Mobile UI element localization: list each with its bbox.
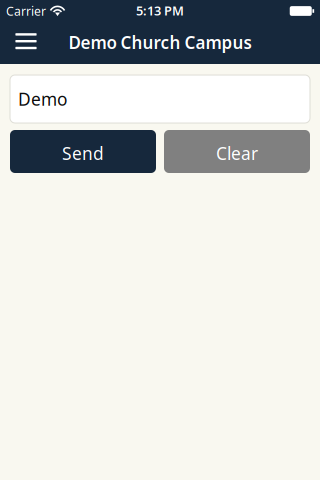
button[interactable]: Send xyxy=(10,130,156,173)
button[interactable]: Menu xyxy=(4,20,48,62)
staticText: Clear xyxy=(216,141,258,165)
staticText: Send xyxy=(62,141,104,165)
button[interactable]: Clear xyxy=(164,130,310,173)
staticText: Demo Church Campus xyxy=(68,31,251,54)
staticText: Carrier xyxy=(6,3,46,19)
staticText: Demo xyxy=(18,87,67,111)
staticText: 5:13 PM xyxy=(136,2,184,19)
button[interactable]: Message xyxy=(10,75,310,123)
